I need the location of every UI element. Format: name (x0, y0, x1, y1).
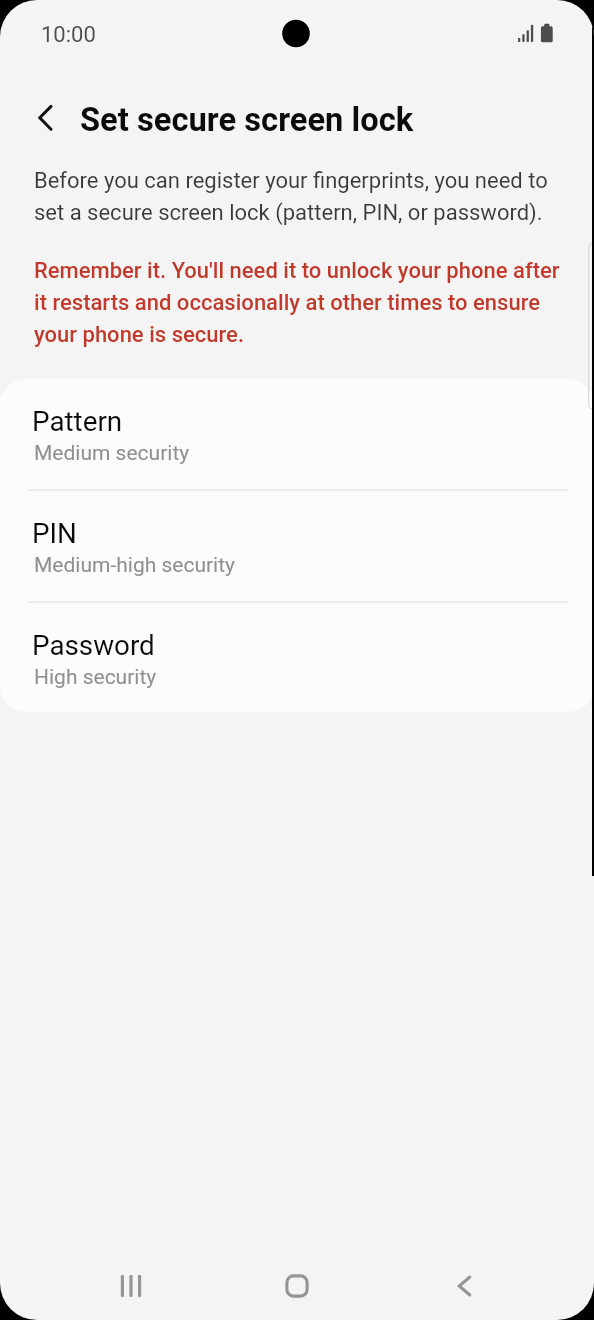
button[interactable]: Home (272, 1261, 322, 1311)
button[interactable]: Back (439, 1261, 489, 1311)
button[interactable]: PIN (0, 491, 594, 601)
staticText: Set secure screen lock (80, 101, 414, 139)
staticText: PIN (32, 518, 77, 549)
button[interactable]: Navigate up (18, 97, 60, 139)
staticText: Password (32, 630, 155, 661)
button[interactable]: Pattern (0, 379, 594, 489)
staticText: Remember it. You'll need it to unlock yo… (34, 253, 562, 349)
staticText: Medium-high security (34, 552, 236, 577)
staticText: Before you can register your fingerprint… (34, 163, 560, 227)
button[interactable]: Recent apps (106, 1261, 156, 1311)
staticText: High security (34, 664, 157, 689)
staticText: Pattern (32, 406, 123, 437)
staticText: 10:00 (41, 21, 96, 47)
staticText: Medium security (34, 440, 190, 465)
button[interactable]: Password (0, 603, 594, 712)
